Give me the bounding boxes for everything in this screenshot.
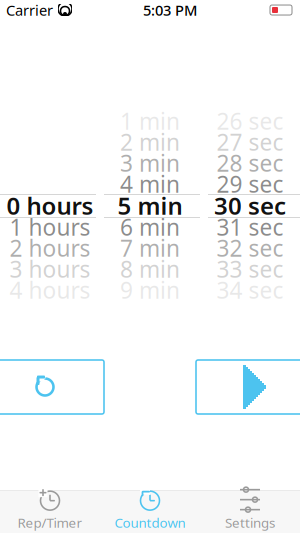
staticText: 31 sec <box>216 212 283 242</box>
staticText: 33 sec <box>216 254 283 284</box>
staticText: 4 hours <box>9 275 90 305</box>
staticText: 30 sec <box>214 190 286 221</box>
staticText: 7 min <box>120 233 180 263</box>
button[interactable]: Rep/Timer <box>0 490 100 528</box>
staticText: 28 sec <box>216 148 283 178</box>
staticText: Rep/Timer <box>17 514 82 531</box>
button[interactable]: Start <box>196 360 300 414</box>
staticText: 26 sec <box>216 106 283 136</box>
staticText: Carrier <box>6 0 53 20</box>
staticText: 8 min <box>120 254 180 284</box>
staticText: 34 sec <box>216 275 283 305</box>
staticText: 0 hours <box>6 190 93 221</box>
button[interactable]: Settings <box>200 490 300 528</box>
staticText: 32 sec <box>216 233 283 263</box>
staticText: 4 min <box>120 169 180 199</box>
button[interactable]: Reset <box>0 360 104 414</box>
staticText: 5 min <box>117 190 182 221</box>
staticText: 29 sec <box>216 169 283 199</box>
staticText: Settings <box>225 514 275 531</box>
staticText: 27 sec <box>216 127 283 157</box>
staticText: 3 min <box>120 148 180 178</box>
staticText: 9 min <box>120 275 180 305</box>
staticText: 1 min <box>120 106 180 136</box>
staticText: 1 hours <box>9 212 90 242</box>
staticText: Countdown <box>114 514 185 531</box>
button[interactable]: Countdown <box>100 490 200 528</box>
staticText: 6 min <box>120 212 180 242</box>
staticText: 2 min <box>120 127 180 157</box>
staticText: 2 hours <box>9 233 90 263</box>
staticText: 3 hours <box>9 254 90 284</box>
staticText: 5:03 PM <box>143 0 197 20</box>
